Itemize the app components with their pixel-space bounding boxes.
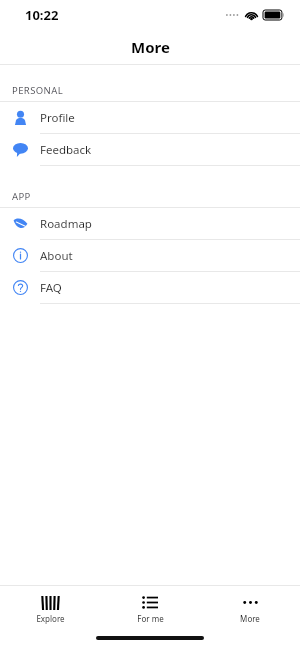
other: More bbox=[242, 596, 259, 609]
button[interactable]: For me bbox=[100, 592, 200, 624]
button[interactable]: More bbox=[200, 592, 300, 624]
button[interactable]: Profile bbox=[0, 102, 300, 133]
staticText: Feedback bbox=[40, 142, 92, 158]
other: For me bbox=[142, 596, 158, 609]
button[interactable]: FAQ bbox=[0, 272, 300, 303]
staticText: Explore bbox=[36, 613, 65, 624]
staticText: More bbox=[131, 37, 170, 57]
button[interactable]: Feedback bbox=[0, 134, 300, 165]
staticText: More bbox=[240, 613, 260, 624]
other: Explore bbox=[42, 596, 59, 610]
button[interactable]: About bbox=[0, 240, 300, 271]
staticText: PERSONAL bbox=[12, 84, 64, 97]
button[interactable]: Explore bbox=[0, 592, 100, 624]
staticText: FAQ bbox=[40, 280, 62, 296]
staticText: Roadmap bbox=[40, 216, 92, 232]
staticText: Profile bbox=[40, 110, 75, 126]
staticText: APP bbox=[12, 190, 31, 203]
staticText: 10:22 bbox=[25, 6, 59, 24]
staticText: About bbox=[40, 248, 73, 264]
staticText: For me bbox=[137, 613, 164, 624]
button[interactable]: Roadmap bbox=[0, 208, 300, 239]
